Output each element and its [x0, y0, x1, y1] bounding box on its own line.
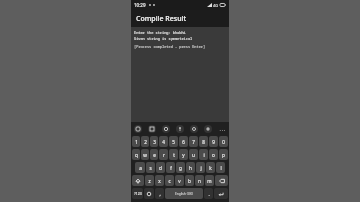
staticText: [Process completed - press Enter] [134, 44, 206, 49]
staticText: 10:29 [134, 2, 146, 8]
staticText: l [220, 165, 222, 171]
staticText: 3 [153, 139, 156, 145]
staticText: p [222, 152, 225, 158]
button[interactable]: j [196, 162, 205, 173]
staticText: j [200, 165, 202, 171]
button[interactable]: f [166, 162, 175, 173]
button[interactable]: , [155, 188, 164, 199]
button[interactable]: Shift [132, 175, 144, 186]
staticText: u [192, 152, 195, 158]
button[interactable]: a [135, 162, 145, 173]
button[interactable]: g [176, 162, 185, 173]
button[interactable]: x [155, 175, 164, 186]
staticText: f [170, 165, 172, 171]
staticText: t [173, 152, 175, 158]
staticText: Compile Result [136, 14, 187, 24]
button[interactable]: Keyboard tool 6 [204, 125, 212, 133]
staticText: 1 [135, 139, 138, 145]
staticText: 0 [222, 139, 225, 145]
staticText: s [149, 165, 152, 171]
staticText: 4 [162, 139, 165, 145]
button[interactable]: 6 [179, 136, 188, 147]
button[interactable]: m [205, 175, 214, 186]
button[interactable]: q [132, 149, 140, 160]
button[interactable]: Emoji [144, 188, 154, 199]
button[interactable]: e [150, 149, 158, 160]
staticText: w [143, 152, 147, 158]
button[interactable]: Keyboard tool 1 [134, 125, 142, 133]
button[interactable]: English (UK) [165, 188, 203, 199]
button[interactable]: Keyboard tool 5 [190, 125, 198, 133]
button[interactable]: k [206, 162, 215, 173]
staticText: v [178, 178, 181, 184]
button[interactable]: 9 [209, 136, 218, 147]
staticText: 4G [213, 3, 219, 8]
staticText: Given string is symmetrical [134, 36, 193, 41]
staticText: , [159, 191, 161, 197]
staticText: English (UK) [175, 192, 193, 196]
staticText: ⋯ [219, 126, 225, 133]
button[interactable]: z [145, 175, 154, 186]
staticText: r [163, 152, 165, 158]
staticText: m [207, 178, 212, 184]
button[interactable]: u [189, 149, 198, 160]
staticText: y [182, 152, 185, 158]
button[interactable]: Keyboard tool 2 [148, 125, 156, 133]
button[interactable]: 4 [159, 136, 168, 147]
staticText: a [139, 165, 142, 171]
staticText: k [209, 165, 212, 171]
staticText: d [159, 165, 162, 171]
staticText: Enter the string: bhabhi [134, 30, 186, 35]
staticText: i [203, 152, 205, 158]
button[interactable]: h [186, 162, 195, 173]
staticText: 2 [144, 139, 147, 145]
staticText: 5 [172, 139, 175, 145]
button[interactable]: s [146, 162, 155, 173]
staticText: h [189, 165, 192, 171]
button[interactable]: 0 [219, 136, 228, 147]
staticText: o [212, 152, 215, 158]
button[interactable]: v [175, 175, 184, 186]
staticText: ?123 [134, 191, 142, 196]
button[interactable]: 1 [132, 136, 140, 147]
button[interactable]: ?123 [132, 188, 143, 199]
button[interactable]: o [209, 149, 218, 160]
staticText: 7 [192, 139, 195, 145]
button[interactable]: i [199, 149, 208, 160]
staticText: z [148, 178, 151, 184]
button[interactable]: 3 [150, 136, 158, 147]
button[interactable]: Keyboard tool 4 [176, 125, 184, 133]
staticText: q [135, 152, 138, 158]
button[interactable]: r [159, 149, 168, 160]
button[interactable]: Keyboard tool 3 [162, 125, 170, 133]
button[interactable]: More keyboard options [218, 125, 226, 133]
staticText: . [208, 191, 210, 197]
staticText: n [198, 178, 201, 184]
staticText: 8 [202, 139, 205, 145]
button[interactable]: c [165, 175, 174, 186]
button[interactable]: 7 [189, 136, 198, 147]
staticText: e [153, 152, 156, 158]
staticText: b [188, 178, 191, 184]
button[interactable]: 8 [199, 136, 208, 147]
button[interactable]: p [219, 149, 228, 160]
button[interactable]: l [216, 162, 225, 173]
staticText: x [158, 178, 161, 184]
button[interactable]: y [179, 149, 188, 160]
button[interactable]: 2 [141, 136, 149, 147]
button[interactable]: Enter [214, 188, 228, 199]
button[interactable]: d [156, 162, 165, 173]
staticText: 6 [182, 139, 185, 145]
staticText: g [179, 165, 182, 171]
button[interactable]: . [204, 188, 213, 199]
button[interactable]: b [185, 175, 194, 186]
button[interactable]: Backspace [215, 175, 228, 186]
button[interactable]: 5 [169, 136, 178, 147]
button[interactable]: n [195, 175, 204, 186]
button[interactable]: w [141, 149, 149, 160]
button[interactable]: t [169, 149, 178, 160]
staticText: c [168, 178, 171, 184]
staticText: 9 [212, 139, 215, 145]
